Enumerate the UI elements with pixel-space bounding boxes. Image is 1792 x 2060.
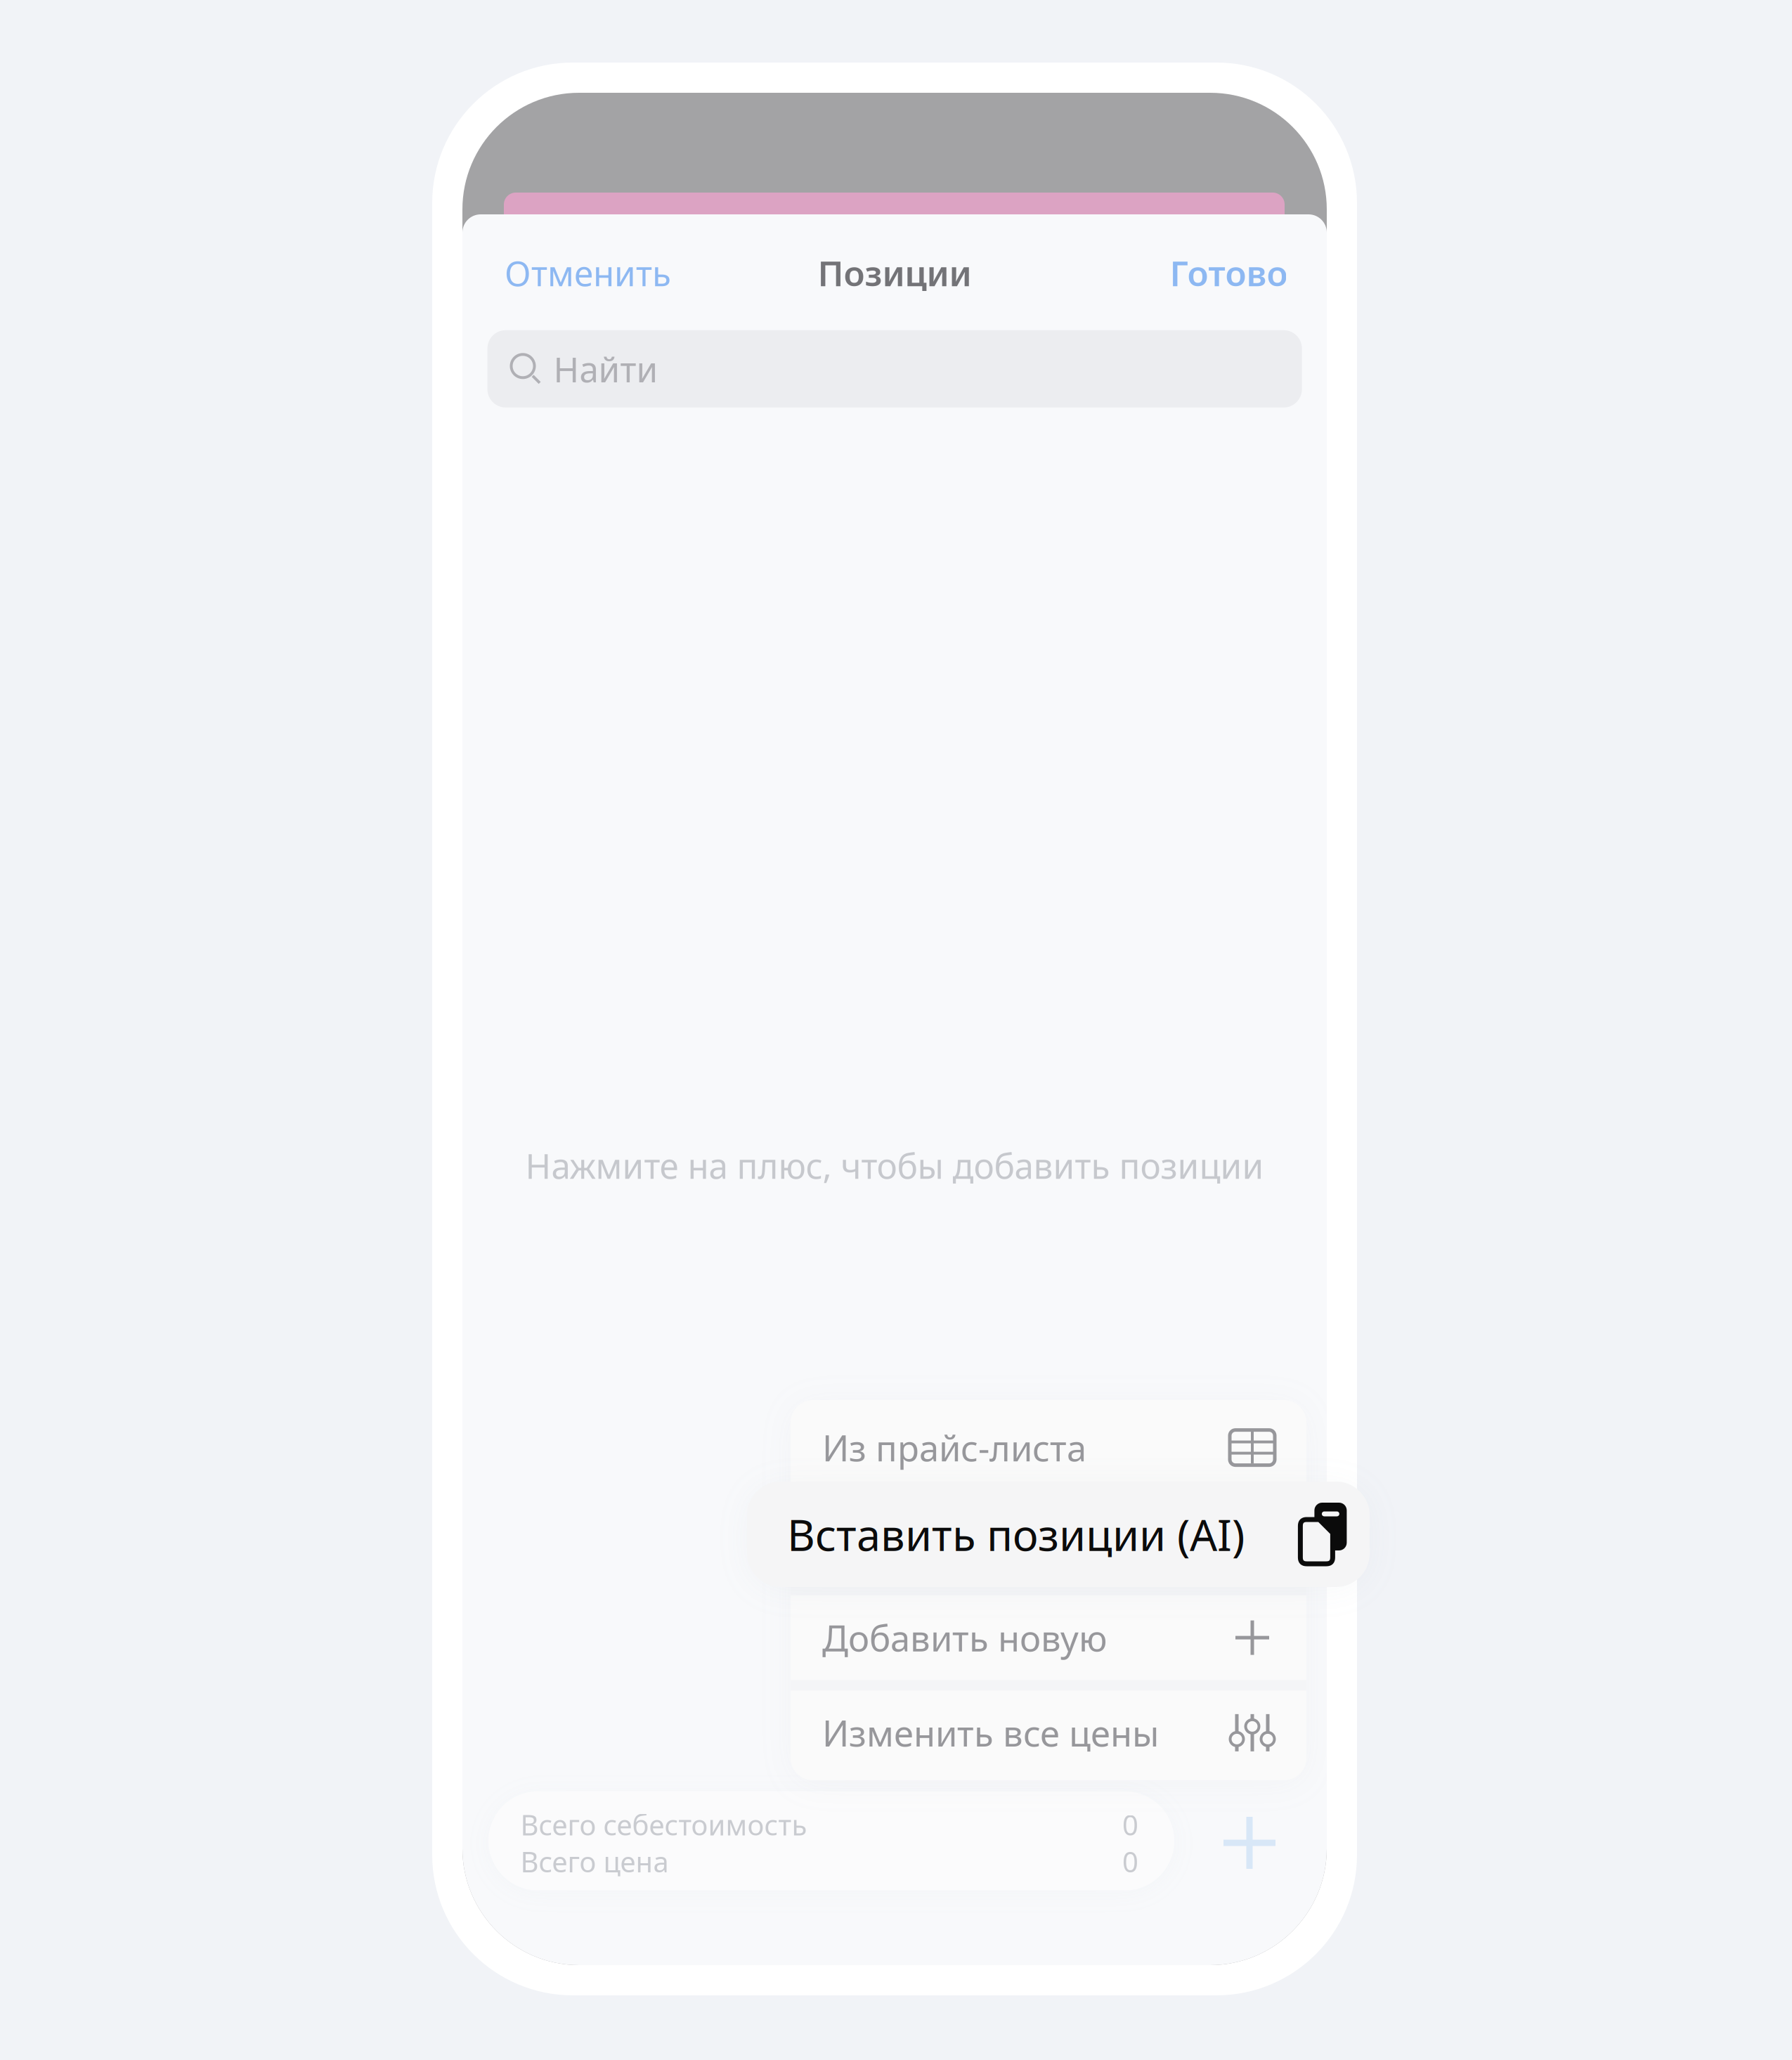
button[interactable]: Вставить позиции (AI)	[747, 1482, 1370, 1587]
staticText: Отменить	[505, 250, 671, 296]
button[interactable]: Добавить новую	[791, 1590, 1306, 1685]
button[interactable]: Найти	[487, 330, 1302, 408]
staticText: Всего себестоимость	[520, 1806, 807, 1843]
staticText: Позиции	[818, 250, 972, 296]
button[interactable]: Отменить	[489, 231, 687, 314]
button[interactable]: Добавить позицию	[1200, 1794, 1299, 1892]
staticText: Добавить новую	[822, 1614, 1107, 1661]
staticText: Найти	[553, 346, 658, 392]
staticText: Всего цена	[520, 1843, 669, 1880]
staticText: 0	[1122, 1806, 1138, 1843]
button[interactable]: Готово	[1154, 231, 1303, 314]
staticText: Вставить позиции (AI)	[787, 1506, 1245, 1563]
staticText: Изменить все цены	[822, 1709, 1159, 1756]
button[interactable]: Из прайс-листа	[791, 1400, 1306, 1495]
staticText: Из прайс-листа	[822, 1424, 1086, 1471]
staticText: Готово	[1170, 250, 1288, 296]
button[interactable]: Изменить все цены	[791, 1685, 1306, 1780]
button[interactable]: Вставить позиции (AI)	[791, 1495, 1306, 1590]
staticText: 0	[1122, 1843, 1138, 1880]
staticText: Нажмите на плюс, чтобы добавить позиции	[525, 1142, 1264, 1188]
staticText: Вставить позиции (AI)	[822, 1519, 1200, 1566]
